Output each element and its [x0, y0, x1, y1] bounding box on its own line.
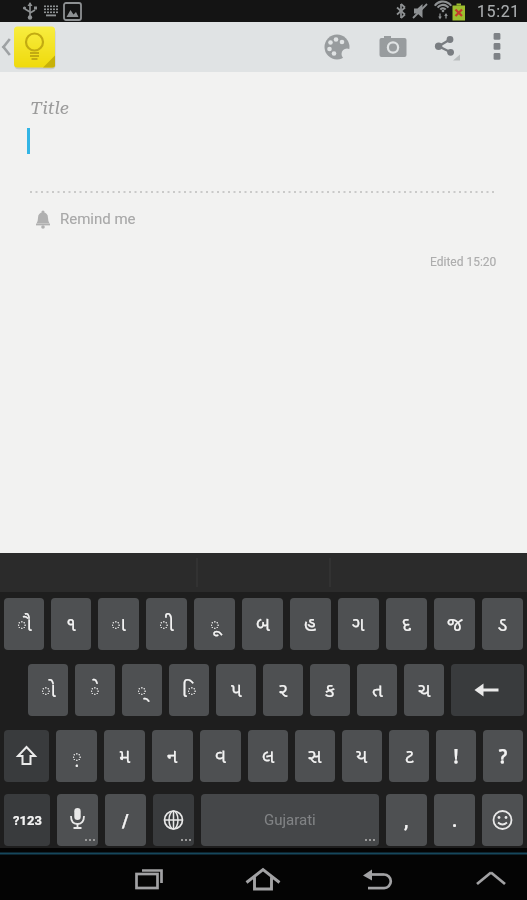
button[interactable]: ે: [75, 664, 115, 716]
staticText: ા: [111, 611, 126, 637]
staticText: બ: [256, 611, 270, 637]
staticText: ન: [167, 743, 178, 769]
button[interactable]: લ: [248, 730, 288, 782]
button[interactable]: [0, 22, 55, 72]
button[interactable]: ?: [483, 730, 523, 782]
button[interactable]: [309, 22, 365, 72]
button[interactable]: Remind me: [34, 208, 136, 230]
staticText: ઼: [72, 743, 82, 769]
staticText: હ: [304, 611, 317, 637]
button[interactable]: િ: [169, 664, 209, 716]
button[interactable]: હ: [290, 598, 331, 650]
button[interactable]: ?123: [4, 794, 50, 846]
button[interactable]: દ: [386, 598, 427, 650]
staticText: દ: [402, 611, 411, 637]
button[interactable]: [92, 856, 206, 900]
staticText: Remind me: [60, 210, 136, 228]
staticText: ?: [498, 743, 508, 769]
button[interactable]: ચ: [404, 664, 444, 716]
button[interactable]: ,: [386, 794, 427, 846]
button[interactable]: બ: [242, 598, 283, 650]
button[interactable]: [482, 794, 523, 846]
button[interactable]: ટ: [389, 730, 429, 782]
button[interactable]: જ: [434, 598, 475, 650]
staticText: !: [452, 743, 460, 769]
button[interactable]: [57, 794, 98, 846]
staticText: ૌ: [17, 611, 32, 637]
staticText: ૧: [66, 611, 77, 637]
button[interactable]: ક: [310, 664, 350, 716]
staticText: /: [122, 810, 129, 831]
staticText: Gujarati: [264, 811, 316, 829]
staticText: ટ: [405, 743, 414, 769]
staticText: ક: [325, 677, 335, 703]
staticText: ી: [159, 611, 174, 637]
staticText: ચ: [418, 677, 431, 703]
button[interactable]: !: [436, 730, 476, 782]
button[interactable]: વ: [200, 730, 241, 782]
button[interactable]: ન: [152, 730, 193, 782]
staticText: ૂ: [210, 611, 220, 637]
button[interactable]: .: [434, 794, 475, 846]
staticText: ય: [356, 743, 368, 769]
button[interactable]: ત: [357, 664, 397, 716]
staticText: િ: [182, 677, 197, 703]
staticText: ડ: [498, 611, 508, 637]
button[interactable]: [4, 730, 49, 782]
button[interactable]: ડ: [482, 598, 523, 650]
staticText: પ: [231, 677, 242, 703]
staticText: વ: [215, 743, 226, 769]
staticText: લ: [262, 743, 275, 769]
staticText: ?123: [13, 813, 42, 828]
button[interactable]: ૌ: [4, 598, 44, 650]
button[interactable]: ગ: [338, 598, 379, 650]
button[interactable]: ી: [146, 598, 187, 650]
staticText: 15:21: [477, 2, 520, 21]
button[interactable]: પ: [216, 664, 256, 716]
button[interactable]: [320, 856, 434, 900]
staticText: ે: [90, 677, 100, 703]
staticText: ,: [404, 810, 409, 831]
button[interactable]: [434, 856, 527, 900]
staticText: ો: [41, 677, 56, 703]
staticText: જ: [447, 611, 463, 637]
button[interactable]: ો: [28, 664, 68, 716]
button[interactable]: ર: [263, 664, 303, 716]
button[interactable]: [365, 22, 421, 72]
staticText: Title: [30, 97, 69, 118]
button[interactable]: ૂ: [194, 598, 235, 650]
button[interactable]: Gujarati: [201, 794, 379, 846]
button[interactable]: [451, 664, 524, 716]
button[interactable]: [206, 856, 320, 900]
button[interactable]: ઼: [56, 730, 97, 782]
staticText: સ: [308, 743, 322, 769]
staticText: ્: [137, 677, 147, 703]
button[interactable]: [419, 22, 473, 72]
button[interactable]: [473, 22, 521, 72]
staticText: Edited 15:20: [430, 255, 497, 269]
button[interactable]: ા: [98, 598, 139, 650]
button[interactable]: મ: [104, 730, 145, 782]
staticText: ગ: [352, 611, 365, 637]
button[interactable]: /: [105, 794, 146, 846]
button[interactable]: ૧: [51, 598, 91, 650]
staticText: મ: [119, 743, 131, 769]
button[interactable]: [153, 794, 194, 846]
button[interactable]: ્: [122, 664, 162, 716]
staticText: ત: [372, 677, 383, 703]
staticText: ર: [279, 677, 288, 703]
button[interactable]: ય: [342, 730, 382, 782]
staticText: .: [452, 810, 458, 831]
button[interactable]: સ: [295, 730, 335, 782]
